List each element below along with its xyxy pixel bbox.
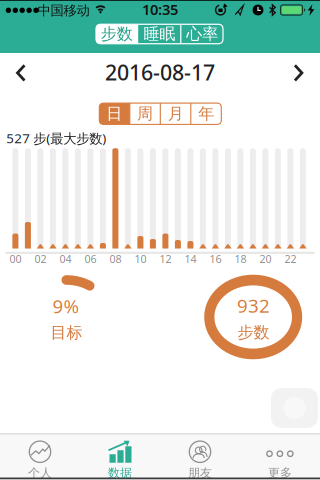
staticText: 年 [198, 104, 214, 124]
staticText: 日 [106, 104, 122, 124]
staticText: 9% [52, 294, 79, 318]
button[interactable]: 更多 [240, 434, 320, 480]
button[interactable]: 数据 [80, 434, 160, 480]
staticText: 10 [134, 252, 146, 266]
staticText: 14 [184, 252, 196, 266]
button[interactable]: 个人 [0, 434, 80, 480]
staticText: 月 [168, 104, 184, 124]
staticText: 22 [284, 252, 296, 266]
button[interactable]: Next day [293, 64, 303, 81]
button[interactable]: 年 [191, 103, 222, 125]
staticText: 12 [159, 252, 171, 266]
staticText: 个人 [28, 466, 52, 480]
button[interactable]: 周 [130, 103, 160, 125]
staticText: 朋友 [188, 466, 212, 480]
staticText: 步数 [101, 24, 133, 44]
staticText: 20 [259, 252, 271, 266]
staticText: 更多 [268, 466, 292, 480]
staticText: 00 [9, 252, 21, 266]
staticText: 16 [209, 252, 221, 266]
staticText: 06 [84, 252, 96, 266]
button[interactable]: 朋友 [160, 434, 240, 480]
staticText: 10:35 [142, 0, 178, 19]
staticText: 目标 [51, 323, 83, 343]
button[interactable]: 步数 [95, 24, 138, 44]
staticText: 心率 [186, 24, 218, 44]
staticText: 527 步(最大步数) [6, 129, 106, 147]
button[interactable]: 日 [99, 103, 130, 125]
button[interactable]: Quick action [271, 388, 318, 428]
staticText: 步数 [237, 323, 269, 342]
staticText: 中国移动 [38, 2, 90, 19]
staticText: 18 [234, 252, 246, 266]
button[interactable]: 月 [160, 103, 191, 125]
staticText: 周 [137, 104, 153, 124]
staticText: 04 [59, 252, 71, 266]
staticText: 932 [237, 293, 270, 318]
button[interactable]: 心率 [181, 24, 223, 44]
button[interactable]: 睡眠 [138, 24, 181, 44]
staticText: 08 [109, 252, 121, 266]
staticText: 2016-08-17 [105, 58, 215, 86]
staticText: 数据 [108, 466, 132, 480]
button[interactable]: Previous day [16, 64, 26, 81]
staticText: 睡眠 [143, 24, 175, 44]
staticText: 02 [34, 252, 46, 266]
